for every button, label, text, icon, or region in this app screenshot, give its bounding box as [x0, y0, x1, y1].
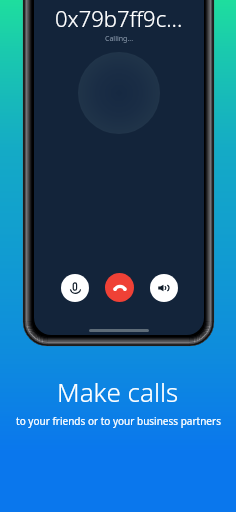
staticText: to your friends or to your business part…: [16, 414, 221, 428]
staticText: Make calls: [57, 374, 179, 409]
button[interactable]: End call: [105, 273, 134, 302]
staticText: 0x79b7ff9c...: [55, 3, 183, 33]
staticText: Calling...: [105, 34, 134, 44]
button[interactable]: Speaker: [150, 274, 178, 302]
button[interactable]: Mute microphone: [61, 274, 89, 302]
